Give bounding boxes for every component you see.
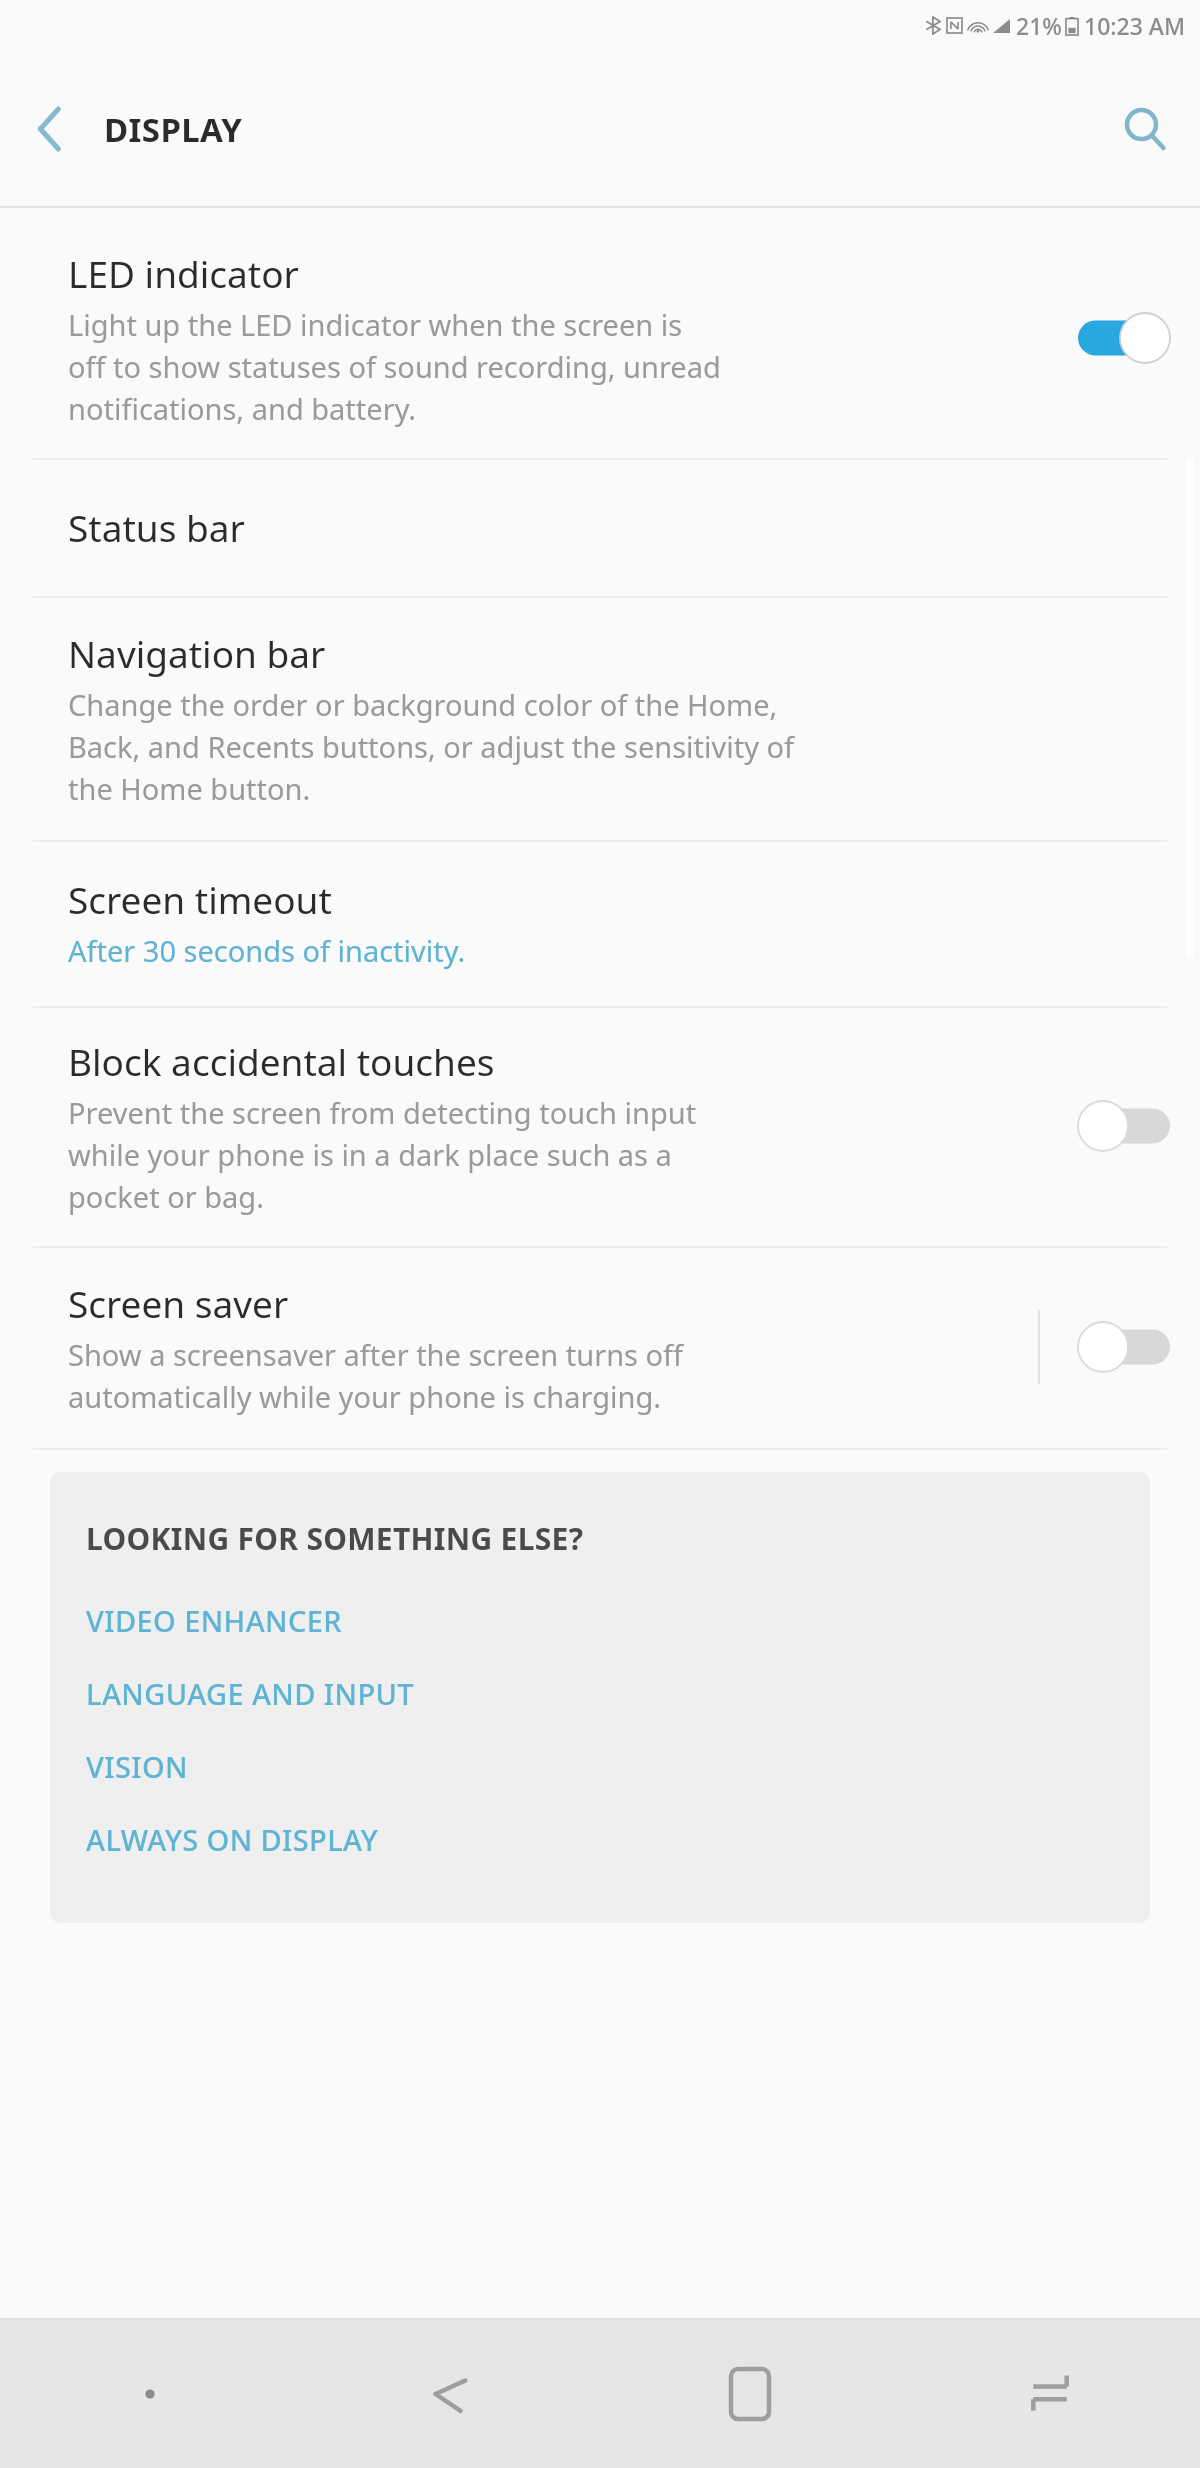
button[interactable]: Status bar: [0, 460, 1200, 596]
button[interactable]: Search: [1090, 74, 1200, 184]
staticText: Navigation bar: [68, 628, 326, 678]
button[interactable]: Back: [0, 79, 100, 179]
staticText: Screen timeout: [68, 874, 332, 924]
button[interactable]: LANGUAGE AND INPUT: [86, 1662, 1114, 1725]
staticText: LED indicator: [68, 248, 299, 298]
staticText: Block accidental touches: [68, 1036, 495, 1086]
staticText: Prevent the screen from detecting touch …: [68, 1093, 697, 1216]
staticText: DISPLAY: [104, 107, 243, 152]
staticText: LANGUAGE AND INPUT: [86, 1674, 414, 1713]
button[interactable]: Screen saver: [0, 1248, 1200, 1448]
button[interactable]: Toggle on: [1078, 313, 1170, 363]
button[interactable]: Menu: [0, 2320, 300, 2468]
staticText: Change the order or background color of …: [68, 685, 795, 808]
staticText: Show a screensaver after the screen turn…: [68, 1335, 684, 1416]
button[interactable]: Back: [300, 2320, 600, 2468]
staticText: 21%: [1016, 10, 1062, 41]
staticText: After 30 seconds of inactivity.: [68, 931, 466, 970]
button[interactable]: Block accidental touches: [0, 1008, 1200, 1246]
button[interactable]: Navigation bar: [0, 598, 1200, 840]
button[interactable]: VISION: [86, 1735, 1114, 1798]
staticText: Status bar: [68, 502, 245, 552]
staticText: ALWAYS ON DISPLAY: [86, 1820, 379, 1859]
button[interactable]: Recents: [900, 2320, 1200, 2468]
staticText: VIDEO ENHANCER: [86, 1601, 343, 1640]
staticText: Screen saver: [68, 1278, 289, 1328]
button[interactable]: LED indicator: [0, 220, 1200, 458]
button[interactable]: Toggle off: [1078, 1101, 1170, 1151]
button[interactable]: VIDEO ENHANCER: [86, 1589, 1114, 1652]
staticText: 10:23 AM: [1084, 10, 1186, 41]
button[interactable]: ALWAYS ON DISPLAY: [86, 1808, 1114, 1871]
button[interactable]: Screen timeout: [0, 842, 1200, 1006]
staticText: VISION: [86, 1747, 188, 1786]
staticText: Light up the LED indicator when the scre…: [68, 305, 721, 428]
button[interactable]: Toggle off: [1078, 1322, 1170, 1372]
button[interactable]: Home: [600, 2320, 900, 2468]
staticText: LOOKING FOR SOMETHING ELSE?: [86, 1518, 584, 1559]
